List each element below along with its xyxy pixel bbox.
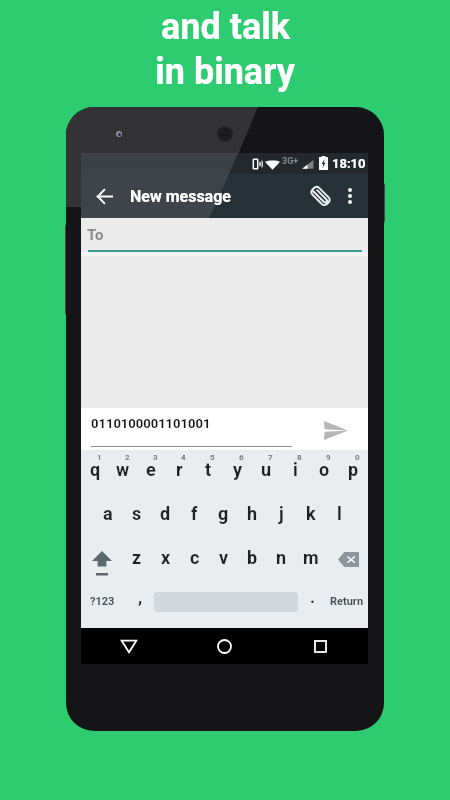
staticText: w xyxy=(116,459,130,480)
staticText: j xyxy=(279,503,284,524)
staticText: ?123 xyxy=(90,595,115,608)
staticText: o xyxy=(319,459,330,480)
staticText: d xyxy=(160,503,171,524)
button[interactable]: ?123 xyxy=(81,576,124,628)
button[interactable]: j xyxy=(267,492,296,534)
staticText: 3 xyxy=(153,453,158,462)
button[interactable]: Return xyxy=(326,576,368,628)
button[interactable]: , xyxy=(124,576,154,628)
staticText: m xyxy=(303,547,319,568)
button[interactable]: . xyxy=(298,576,326,628)
staticText: 5 xyxy=(210,453,215,462)
button[interactable]: 0 xyxy=(339,450,368,492)
button[interactable]: 1 xyxy=(81,450,109,492)
button[interactable]: 5 xyxy=(194,450,223,492)
button[interactable]: 3 xyxy=(137,450,165,492)
staticText: To xyxy=(87,226,104,244)
staticText: r xyxy=(176,459,183,480)
staticText: u xyxy=(261,459,272,480)
button[interactable]: z xyxy=(123,534,151,576)
button[interactable]: v xyxy=(209,534,238,576)
button[interactable]: Back xyxy=(81,628,176,664)
staticText: New message xyxy=(130,187,231,206)
staticText: in binary xyxy=(155,51,295,93)
button[interactable]: k xyxy=(296,492,325,534)
staticText: 2 xyxy=(125,453,130,462)
staticText: p xyxy=(348,459,359,480)
button[interactable]: d xyxy=(151,492,180,534)
button[interactable]: Space xyxy=(154,576,298,628)
button[interactable]: Recent apps xyxy=(272,628,368,664)
button[interactable]: Navigate up xyxy=(86,174,123,218)
button[interactable]: g xyxy=(209,492,238,534)
button[interactable]: c xyxy=(180,534,209,576)
button[interactable]: Attach file xyxy=(299,174,341,218)
staticText: v xyxy=(219,547,229,568)
staticText: 4 xyxy=(181,453,186,462)
staticText: 8 xyxy=(297,453,302,462)
button[interactable]: 4 xyxy=(165,450,194,492)
button[interactable]: 8 xyxy=(281,450,310,492)
button[interactable]: 9 xyxy=(310,450,339,492)
button[interactable]: s xyxy=(122,492,151,534)
staticText: s xyxy=(132,503,142,524)
staticText: 0110100001101001 xyxy=(91,416,211,431)
button[interactable]: Send xyxy=(321,418,351,442)
staticText: 1 xyxy=(97,453,102,462)
button[interactable]: 2 xyxy=(109,450,137,492)
button[interactable]: a xyxy=(94,492,122,534)
staticText: Return xyxy=(330,595,364,608)
staticText: g xyxy=(218,503,229,524)
staticText: 3G+ xyxy=(282,156,299,167)
button[interactable]: b xyxy=(238,534,267,576)
staticText: h xyxy=(247,503,258,524)
staticText: b xyxy=(247,547,258,568)
staticText: 6 xyxy=(239,453,244,462)
staticText: l xyxy=(337,503,342,524)
staticText: f xyxy=(191,503,198,524)
button[interactable]: More options xyxy=(332,174,368,218)
button[interactable]: f xyxy=(180,492,209,534)
button[interactable]: 7 xyxy=(252,450,281,492)
button[interactable]: m xyxy=(296,534,325,576)
staticText: t xyxy=(205,459,212,480)
staticText: 7 xyxy=(268,453,273,462)
staticText: a xyxy=(103,503,113,524)
button[interactable]: l xyxy=(325,492,354,534)
staticText: 0 xyxy=(355,453,360,462)
staticText: and talk xyxy=(161,6,290,48)
button[interactable]: Backspace xyxy=(325,534,368,576)
staticText: e xyxy=(146,459,156,480)
button[interactable]: x xyxy=(151,534,180,576)
staticText: , xyxy=(138,587,143,607)
staticText: n xyxy=(276,547,287,568)
staticText: 18:10 xyxy=(332,156,366,171)
staticText: 9 xyxy=(326,453,331,462)
staticText: x xyxy=(161,547,171,568)
staticText: z xyxy=(132,547,142,568)
button[interactable]: h xyxy=(238,492,267,534)
button[interactable]: Home xyxy=(176,628,272,664)
button[interactable]: n xyxy=(267,534,296,576)
button[interactable]: 6 xyxy=(223,450,252,492)
staticText: i xyxy=(293,459,298,480)
button[interactable]: Shift xyxy=(81,534,123,576)
staticText: k xyxy=(306,503,316,524)
staticText: y xyxy=(233,459,243,480)
staticText: c xyxy=(190,547,200,568)
staticText: q xyxy=(90,459,101,480)
staticText: . xyxy=(310,587,315,607)
